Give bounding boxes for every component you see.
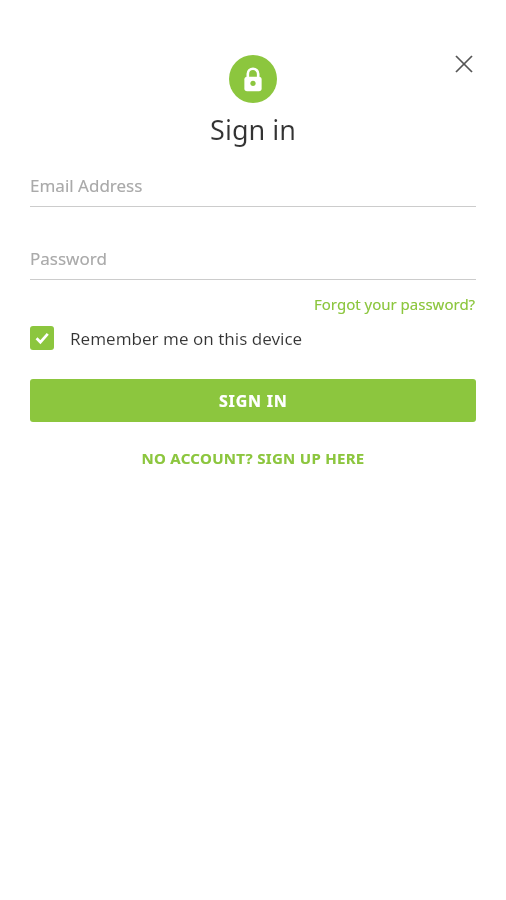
button[interactable]: Email Address: [30, 174, 476, 207]
button[interactable]: NO ACCOUNT? SIGN UP HERE: [129, 444, 377, 472]
staticText: Remember me on this device: [70, 327, 303, 350]
staticText: Sign in: [210, 111, 296, 148]
staticText: Email Address: [30, 174, 143, 197]
staticText: Forgot your password?: [314, 294, 476, 314]
button[interactable]: Forgot your password?: [314, 292, 476, 316]
staticText: SIGN IN: [219, 390, 288, 412]
button[interactable]: Password: [30, 247, 476, 280]
staticText: NO ACCOUNT? SIGN UP HERE: [141, 448, 365, 468]
button[interactable]: Remember me on this device: [30, 326, 476, 350]
button[interactable]: SIGN IN: [30, 379, 476, 422]
staticText: Password: [30, 247, 107, 270]
button[interactable]: Close: [440, 40, 488, 88]
